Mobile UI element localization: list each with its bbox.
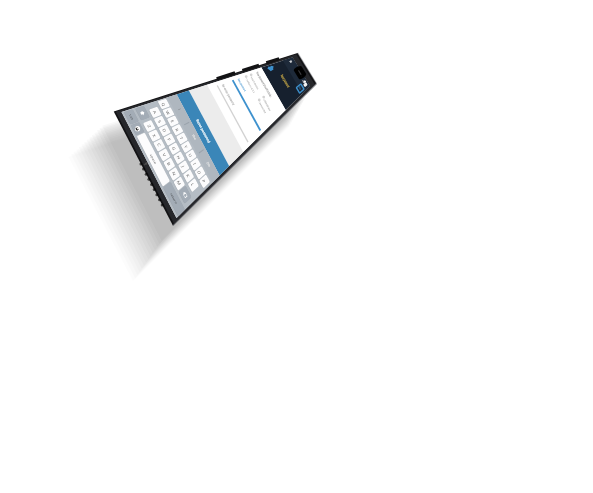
button[interactable]: Reset password [0, 0, 593, 493]
other: Reset password screen mockup [0, 0, 593, 493]
